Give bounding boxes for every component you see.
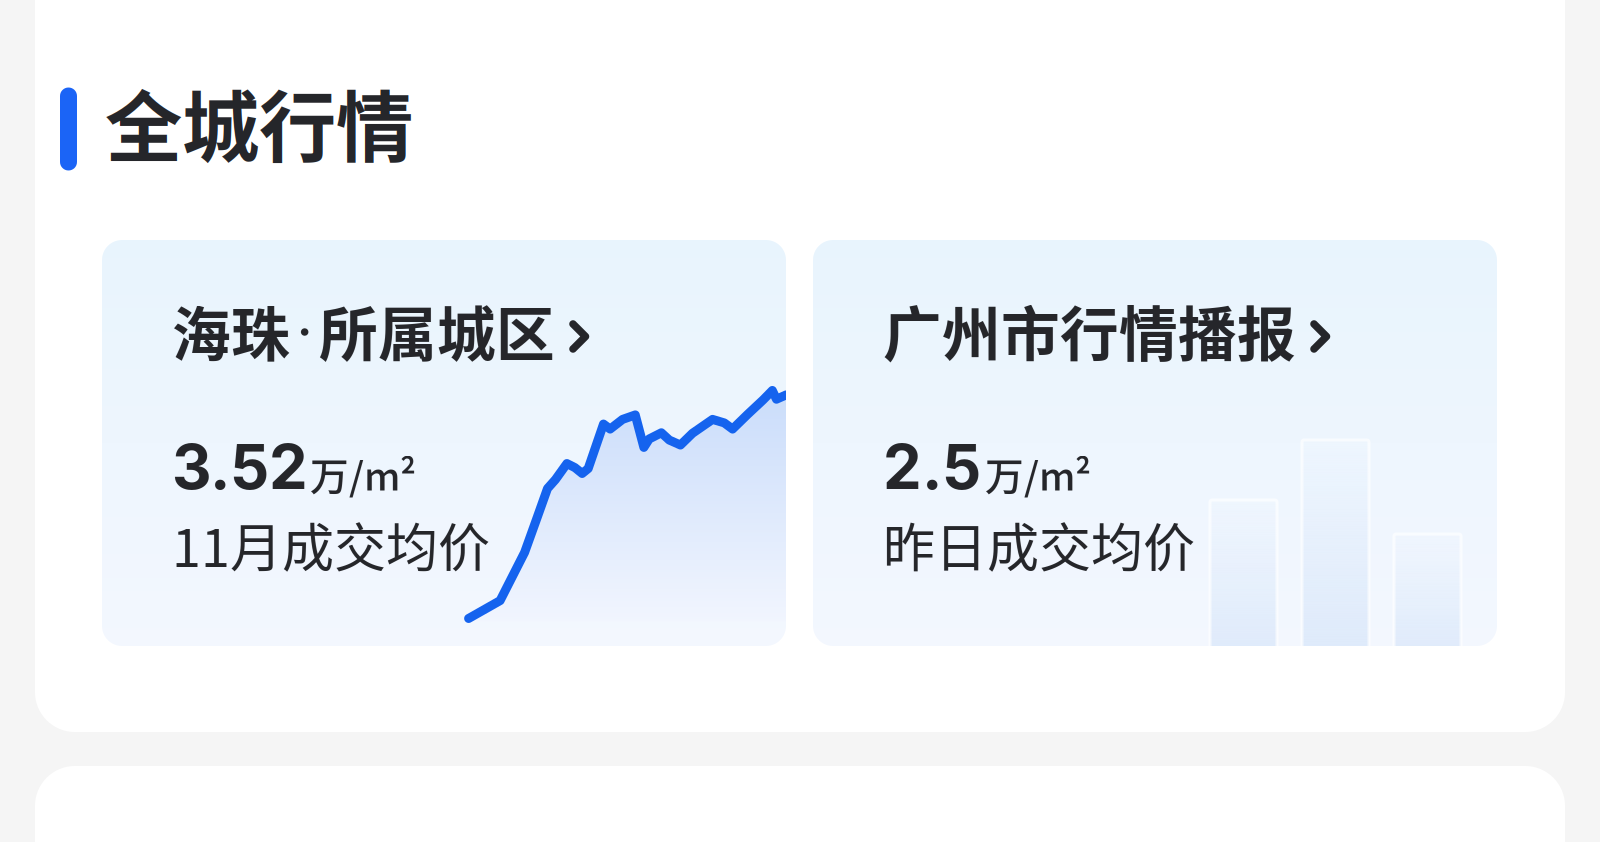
staticText: 昨日成交均价 <box>883 507 1195 582</box>
staticText: 2.5 <box>883 429 981 504</box>
button[interactable]: 海珠 <box>102 240 786 646</box>
staticText: 万/m² <box>310 446 416 502</box>
staticText: 所属城区 <box>319 288 555 373</box>
staticText: 广州市行情播报 <box>883 288 1296 373</box>
button[interactable]: 全城行情 <box>60 79 413 179</box>
button[interactable]: 广州市行情播报 <box>813 240 1497 646</box>
staticText: 海珠 <box>172 288 290 373</box>
staticText: 全城行情 <box>105 66 413 178</box>
staticText: 11月成交均价 <box>172 507 490 582</box>
staticText: 3.52 <box>172 429 308 504</box>
staticText: · <box>290 309 319 352</box>
staticText: 万/m² <box>985 446 1091 502</box>
